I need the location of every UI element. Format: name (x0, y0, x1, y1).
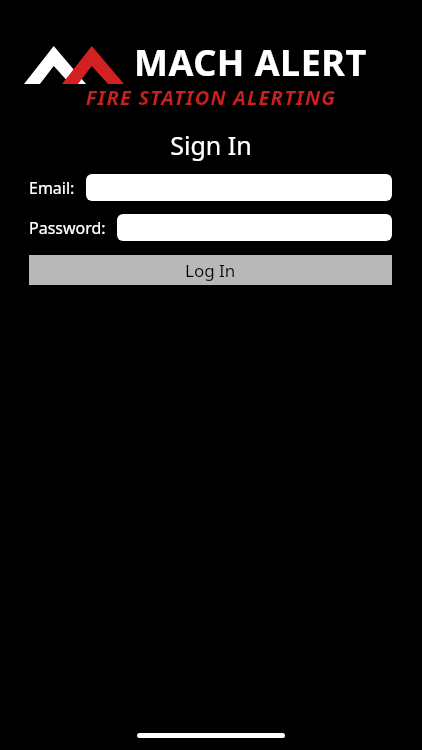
staticText: FIRE STATION ALERTING (0, 84, 422, 111)
button[interactable]: Email input (86, 174, 392, 201)
staticText: MACH ALERT (134, 38, 367, 87)
staticText: Log In (185, 259, 236, 282)
button[interactable]: Log In (29, 255, 392, 285)
staticText: Sign In (0, 128, 422, 162)
staticText: Password: (29, 217, 106, 239)
staticText: Email: (29, 177, 75, 199)
button[interactable]: Password input (117, 214, 392, 241)
